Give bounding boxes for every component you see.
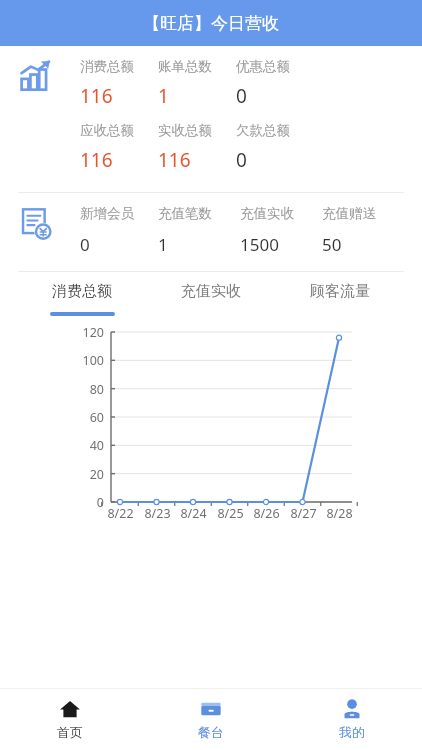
staticText: 40 xyxy=(89,437,104,454)
staticText: 8/26 xyxy=(253,505,280,522)
staticText: 8/22 xyxy=(107,505,134,522)
staticText: 优惠总额 xyxy=(236,58,290,75)
staticText: 8/25 xyxy=(217,505,244,522)
staticText: 我的 xyxy=(339,724,365,740)
staticText: 消费总额 xyxy=(80,58,134,75)
staticText: 80 xyxy=(89,381,104,398)
staticText: 0 xyxy=(236,83,247,109)
button[interactable]: My account xyxy=(281,688,422,750)
staticText: 0 xyxy=(236,147,247,173)
staticText: 1 xyxy=(158,233,168,256)
staticText: 欠款总额 xyxy=(236,122,290,139)
button[interactable]: Home xyxy=(0,688,140,750)
staticText: 100 xyxy=(82,352,104,369)
staticText: 0 xyxy=(80,233,90,256)
button[interactable]: 消费总额 xyxy=(27,272,137,320)
other: Tables xyxy=(200,698,222,720)
staticText: 8/24 xyxy=(180,505,207,522)
staticText: 120 xyxy=(82,324,104,341)
other: Home xyxy=(59,698,81,720)
staticText: 顾客流量 xyxy=(310,282,370,301)
staticText: 消费总额 xyxy=(52,282,112,301)
staticText: 首页 xyxy=(57,724,83,740)
staticText: 20 xyxy=(89,466,104,483)
button[interactable]: Tables xyxy=(140,688,281,750)
staticText: 餐台 xyxy=(198,724,224,740)
staticText: 0 xyxy=(96,494,104,511)
staticText: 新增会员 xyxy=(80,205,134,222)
staticText: 116 xyxy=(80,83,113,109)
staticText: 应收总额 xyxy=(80,122,134,139)
staticText: 充值赠送 xyxy=(322,205,376,222)
staticText: 1500 xyxy=(240,233,279,256)
staticText: 充值实收 xyxy=(240,205,294,222)
staticText: 账单总数 xyxy=(158,58,212,75)
staticText: 116 xyxy=(158,147,191,173)
staticText: 116 xyxy=(80,147,113,173)
staticText: 8/23 xyxy=(144,505,171,522)
button[interactable]: 顾客流量 xyxy=(285,272,395,320)
staticText: 充值笔数 xyxy=(158,205,212,222)
staticText: 1 xyxy=(158,83,169,109)
staticText: 充值实收 xyxy=(181,282,241,301)
staticText: 实收总额 xyxy=(158,122,212,139)
staticText: 8/28 xyxy=(326,505,353,522)
staticText: 50 xyxy=(322,233,342,256)
staticText: 60 xyxy=(89,409,104,426)
other: Recharge statistics xyxy=(18,205,54,241)
button[interactable]: 充值实收 xyxy=(156,272,266,320)
other: Revenue statistics xyxy=(18,58,54,94)
staticText: 【旺店】今日营收 xyxy=(143,13,279,34)
other: My account xyxy=(341,698,363,720)
staticText: 8/27 xyxy=(290,505,317,522)
